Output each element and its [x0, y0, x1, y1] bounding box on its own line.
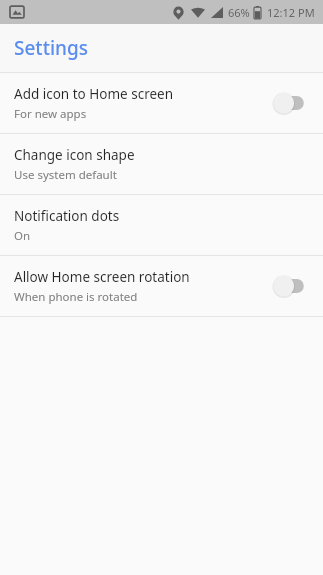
staticText: Use system default: [14, 167, 117, 183]
button[interactable]: Change icon shape: [0, 134, 323, 194]
staticText: Notification dots: [14, 207, 120, 225]
staticText: Change icon shape: [14, 146, 135, 164]
staticText: For new apps: [14, 106, 87, 122]
button[interactable]: Toggle setting: [269, 273, 309, 299]
button[interactable]: Allow Home screen rotation: [0, 256, 323, 316]
staticText: Settings: [14, 35, 88, 61]
button[interactable]: Add icon to Home screen: [0, 73, 323, 133]
staticText: Allow Home screen rotation: [14, 268, 190, 286]
staticText: 12:12 PM: [267, 5, 315, 20]
staticText: Add icon to Home screen: [14, 85, 174, 103]
staticText: 66%: [228, 5, 250, 20]
staticText: On: [14, 228, 31, 244]
staticText: When phone is rotated: [14, 289, 138, 305]
button[interactable]: Notification dots: [0, 195, 323, 255]
button[interactable]: Toggle setting: [269, 90, 309, 116]
